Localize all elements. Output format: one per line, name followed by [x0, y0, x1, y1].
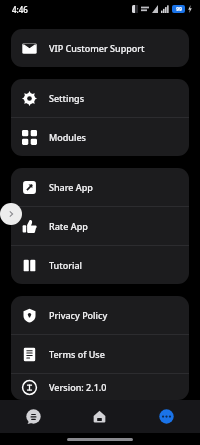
staticText: 99: [176, 6, 182, 13]
staticText: Tutorial: [49, 259, 83, 271]
button[interactable]: Modules: [11, 118, 189, 156]
button[interactable]: Open side panel: [0, 203, 22, 225]
staticText: Modules: [49, 131, 86, 143]
staticText: Version: 2.1.0: [49, 381, 107, 393]
staticText: Share App: [49, 181, 93, 193]
staticText: VIP Customer Support: [49, 42, 145, 54]
button[interactable]: VIP Customer Support: [11, 29, 189, 67]
button[interactable]: Rate App: [11, 207, 189, 245]
button[interactable]: More: [133, 400, 200, 433]
staticText: Rate App: [49, 220, 88, 232]
button[interactable]: Messages: [0, 400, 66, 433]
button[interactable]: Tutorial: [11, 246, 189, 284]
staticText: Privacy Policy: [49, 309, 108, 321]
button[interactable]: Settings: [11, 79, 189, 117]
staticText: Terms of Use: [49, 348, 105, 360]
staticText: Settings: [49, 92, 85, 104]
button[interactable]: Version: 2.1.0: [11, 374, 189, 400]
button[interactable]: Share App: [11, 168, 189, 206]
button[interactable]: Terms of Use: [11, 335, 189, 373]
button[interactable]: Privacy Policy: [11, 296, 189, 334]
staticText: 4:46: [12, 4, 28, 15]
button[interactable]: Home: [66, 400, 133, 433]
